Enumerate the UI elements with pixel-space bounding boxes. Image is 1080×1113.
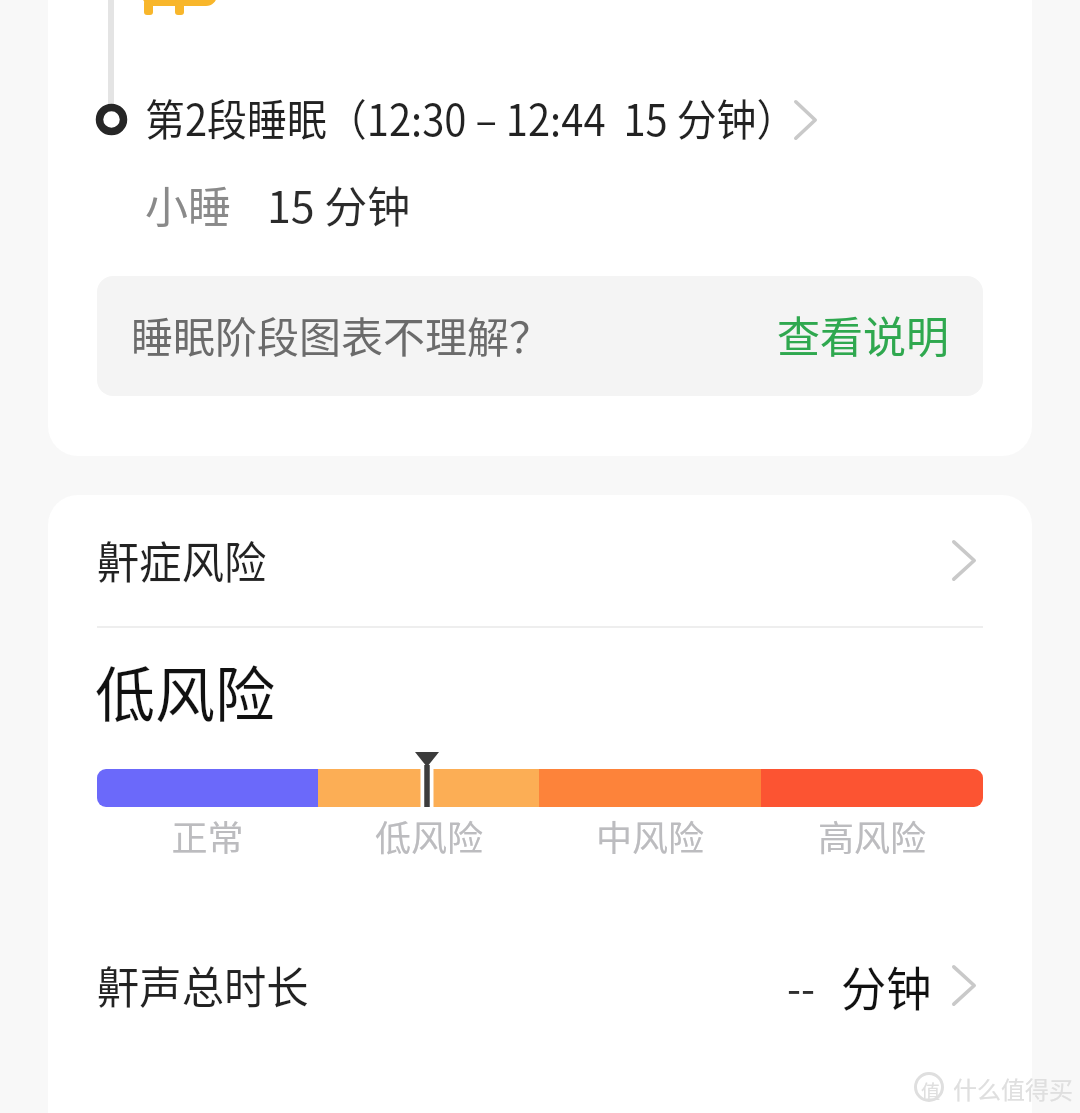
staticText: 正常	[171, 810, 244, 861]
staticText: --	[787, 955, 816, 1016]
staticText: 鼾声总时长	[97, 953, 309, 1017]
staticText: 值	[921, 1077, 941, 1105]
staticText: 小睡	[145, 173, 231, 235]
staticText: 低风险	[374, 810, 484, 861]
staticText: 15 分钟	[267, 173, 411, 235]
staticText: 查看说明	[777, 303, 949, 365]
staticText: 睡眠阶段图表不理解？	[131, 304, 552, 365]
staticText: 中风险	[595, 810, 705, 861]
button[interactable]: 鼾声总时长	[48, 925, 1032, 1045]
staticText: 高风险	[817, 810, 927, 861]
staticText: 分钟	[841, 951, 931, 1019]
button[interactable]: 第2段睡眠（12:30 – 12:44 15 分钟）	[90, 80, 830, 160]
staticText: 什么值得买	[953, 1071, 1073, 1106]
staticText: 第2段睡眠（12:30 – 12:44 15 分钟）	[145, 86, 797, 148]
button[interactable]: 睡眠阶段图表不理解？	[97, 276, 983, 396]
button[interactable]: 鼾症风险	[48, 495, 1032, 626]
staticText: 低风险	[95, 647, 275, 734]
staticText: 鼾症风险	[97, 528, 266, 592]
